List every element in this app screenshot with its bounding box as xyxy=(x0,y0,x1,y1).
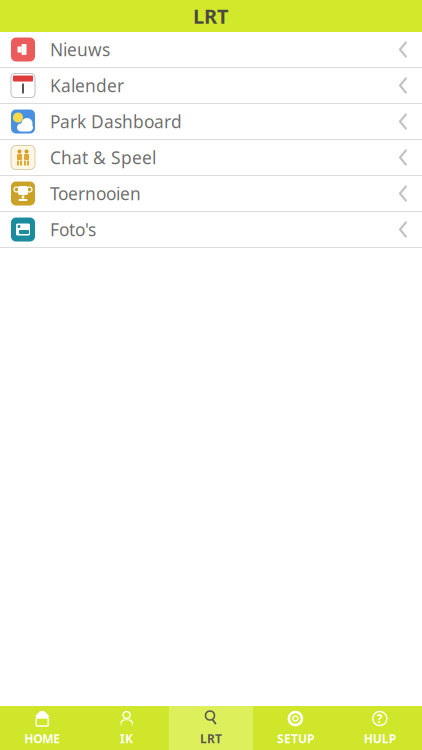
staticText: Nieuws xyxy=(50,38,110,61)
staticText: Foto's xyxy=(50,218,96,241)
staticText: Toernooien xyxy=(50,182,141,205)
button[interactable]: Foto's xyxy=(0,212,422,247)
button[interactable]: Park Dashboard xyxy=(0,104,422,139)
button[interactable]: ? xyxy=(338,706,422,750)
button[interactable]: HOME xyxy=(0,706,84,750)
staticText: HOME xyxy=(24,730,60,746)
button[interactable]: SETUP xyxy=(253,706,338,750)
staticText: Park Dashboard xyxy=(50,110,182,133)
button[interactable]: Toernooien xyxy=(0,176,422,211)
staticText: Chat & Speel xyxy=(50,146,156,169)
staticText: HULP xyxy=(364,730,396,746)
button[interactable]: LRT xyxy=(169,706,253,750)
staticText: IK xyxy=(120,730,133,746)
button[interactable]: Nieuws xyxy=(0,32,422,67)
button[interactable]: Kalender xyxy=(0,68,422,103)
button[interactable]: Chat & Speel xyxy=(0,140,422,175)
staticText: LRT xyxy=(200,730,222,746)
staticText: Kalender xyxy=(50,74,124,97)
staticText: SETUP xyxy=(277,730,314,746)
staticText: ? xyxy=(377,711,383,726)
staticText: LRT xyxy=(193,3,229,29)
button[interactable]: IK xyxy=(84,706,169,750)
